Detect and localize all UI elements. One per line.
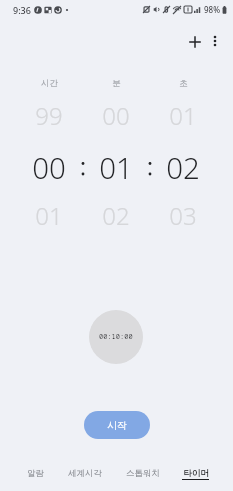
button[interactable]: 세계시각 — [63, 457, 106, 491]
staticText: 알람 — [27, 468, 44, 479]
staticText: 99 — [35, 99, 63, 132]
button[interactable]: 알람 — [23, 457, 47, 491]
staticText: 스톱워치 — [126, 468, 160, 479]
staticText: 초 — [179, 78, 188, 89]
staticText: 01 — [35, 199, 63, 232]
button[interactable]: More options — [201, 27, 229, 55]
staticText: 시간 — [41, 78, 58, 89]
staticText: 00 — [102, 99, 130, 132]
staticText: 분 — [112, 78, 121, 89]
staticText: 9:36 — [13, 4, 31, 16]
staticText: 01 — [99, 147, 133, 187]
staticText: 98% — [204, 4, 220, 15]
staticText: 세계시각 — [68, 468, 102, 479]
staticText: 00:10:00 — [99, 332, 133, 342]
staticText: 02 — [102, 199, 130, 232]
staticText: 03 — [169, 199, 197, 232]
button[interactable]: 00:10:00 — [89, 310, 143, 364]
button[interactable]: 스톱워치 — [122, 457, 163, 491]
staticText: 01 — [169, 99, 197, 132]
button[interactable]: 시작 — [84, 411, 150, 439]
staticText: 02 — [166, 147, 200, 187]
button[interactable]: Add timer — [179, 26, 210, 57]
button[interactable]: 타이머 — [178, 457, 212, 491]
staticText: 00 — [32, 147, 66, 187]
staticText: 시작 — [107, 419, 127, 432]
staticText: 타이머 — [183, 468, 209, 479]
